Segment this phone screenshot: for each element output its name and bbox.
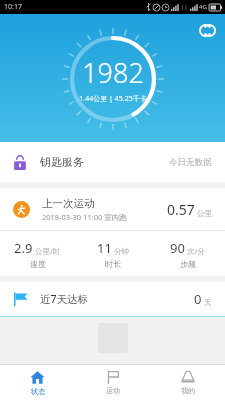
- button[interactable]: 1982: [62, 28, 164, 130]
- staticText: 4G: [199, 3, 207, 11]
- button[interactable]: 近7天达标: [0, 282, 225, 316]
- staticText: 10:17: [4, 2, 22, 12]
- staticText: 0: [194, 290, 202, 308]
- staticText: 状态: [31, 387, 45, 396]
- button[interactable]: 钥匙服务: [0, 142, 225, 182]
- staticText: 分钟: [114, 247, 129, 256]
- staticText: 钥匙服务: [40, 155, 84, 169]
- staticText: 2.9: [14, 239, 33, 257]
- button[interactable]: 运动: [75, 365, 150, 400]
- button[interactable]: 我的: [150, 365, 225, 400]
- staticText: ||: [181, 3, 188, 11]
- staticText: 0.57: [167, 200, 195, 219]
- staticText: 1982: [82, 54, 144, 91]
- staticText: 2018-03-30 11:00 室内跑: [42, 212, 127, 222]
- staticText: 90: [170, 239, 185, 257]
- staticText: 我的: [181, 386, 195, 395]
- button[interactable]: 状态: [0, 365, 75, 400]
- staticText: 今日无数据: [169, 157, 212, 168]
- staticText: 步频: [180, 259, 196, 269]
- staticText: 公里/时: [35, 246, 61, 256]
- staticText: 1.44公里 | 45.25千卡: [79, 94, 147, 104]
- staticText: 运动: [106, 386, 120, 395]
- staticText: 时长: [105, 259, 121, 269]
- button[interactable]: 2.9: [0, 231, 225, 276]
- staticText: 次/分: [187, 246, 205, 256]
- staticText: 近7天达标: [40, 292, 89, 306]
- staticText: 11: [97, 239, 112, 257]
- button[interactable]: Link device: [197, 20, 217, 40]
- button[interactable]: 上一次运动: [0, 188, 225, 230]
- staticText: 速度: [30, 259, 46, 269]
- staticText: 上一次运动: [42, 197, 95, 210]
- staticText: 公里: [197, 209, 212, 218]
- staticText: 天: [204, 298, 212, 307]
